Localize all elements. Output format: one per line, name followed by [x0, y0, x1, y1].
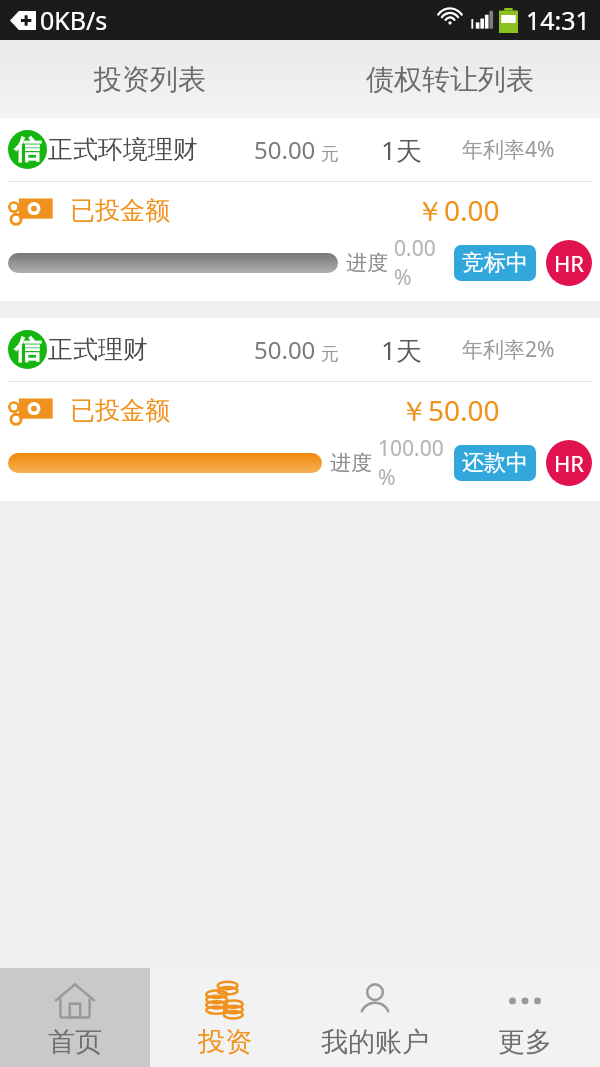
staticText: 还款中 — [462, 449, 528, 477]
button[interactable]: 还款中 — [454, 445, 536, 481]
button[interactable]: 更多 — [450, 968, 600, 1067]
button[interactable]: 竞标中 — [454, 245, 536, 281]
button[interactable]: 信 — [0, 118, 600, 181]
button[interactable]: 首页 — [0, 968, 150, 1067]
staticText: 投资列表 — [94, 62, 206, 97]
staticText: 年利率2% — [462, 335, 555, 364]
staticText: 投资 — [198, 1025, 252, 1059]
staticText: 年利率4% — [462, 135, 555, 164]
staticText: 债权转让列表 — [366, 62, 534, 97]
staticText: 50.00 — [254, 133, 316, 166]
staticText: 更多 — [498, 1025, 552, 1059]
button[interactable]: 投资 — [150, 968, 300, 1067]
button[interactable]: 信 — [0, 318, 600, 381]
staticText: 竞标中 — [462, 249, 528, 277]
staticText: 信 — [14, 333, 41, 367]
staticText: 1天 — [381, 132, 422, 168]
button[interactable]: HR — [546, 240, 592, 286]
staticText: 100.00% — [378, 434, 450, 492]
button[interactable]: 已投金额 — [0, 382, 600, 501]
staticText: 我的账户 — [321, 1025, 429, 1059]
staticText: 元 — [316, 141, 339, 166]
staticText: 元 — [316, 341, 339, 366]
staticText: 已投金额 — [70, 395, 170, 426]
staticText: 0.00% — [394, 234, 450, 292]
staticText: 正式环境理财 — [48, 134, 198, 165]
staticText: 14:31 — [526, 3, 590, 37]
staticText: HR — [554, 448, 584, 478]
staticText: 已投金额 — [70, 195, 170, 226]
staticText: 首页 — [48, 1025, 102, 1059]
staticText: 0KB/s — [40, 3, 108, 37]
button[interactable]: 投资列表 — [0, 40, 300, 118]
button[interactable]: 我的账户 — [300, 968, 450, 1067]
staticText: HR — [554, 248, 584, 278]
button[interactable]: 已投金额 — [0, 182, 600, 301]
staticText: ￥50.00 — [400, 391, 500, 429]
staticText: 正式理财 — [48, 334, 148, 365]
button[interactable]: HR — [546, 440, 592, 486]
staticText: ￥0.00 — [416, 191, 500, 229]
staticText: 50.00 — [254, 333, 316, 366]
staticText: 信 — [14, 133, 41, 167]
staticText: 进度 — [330, 450, 372, 476]
staticText: 进度 — [346, 250, 388, 276]
staticText: 1天 — [381, 332, 422, 368]
button[interactable]: 债权转让列表 — [300, 40, 600, 118]
